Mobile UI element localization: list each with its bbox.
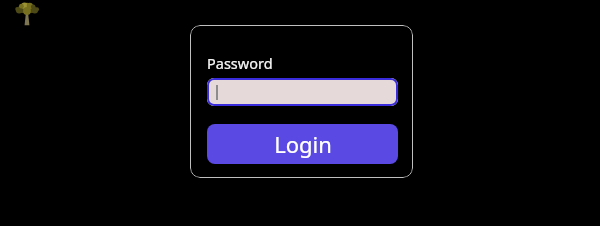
staticText: Login [274, 129, 332, 159]
button[interactable]: Password input field [207, 78, 398, 106]
button[interactable]: Login [207, 124, 398, 164]
staticText: Password [207, 53, 273, 73]
other: App logo [13, 1, 41, 27]
